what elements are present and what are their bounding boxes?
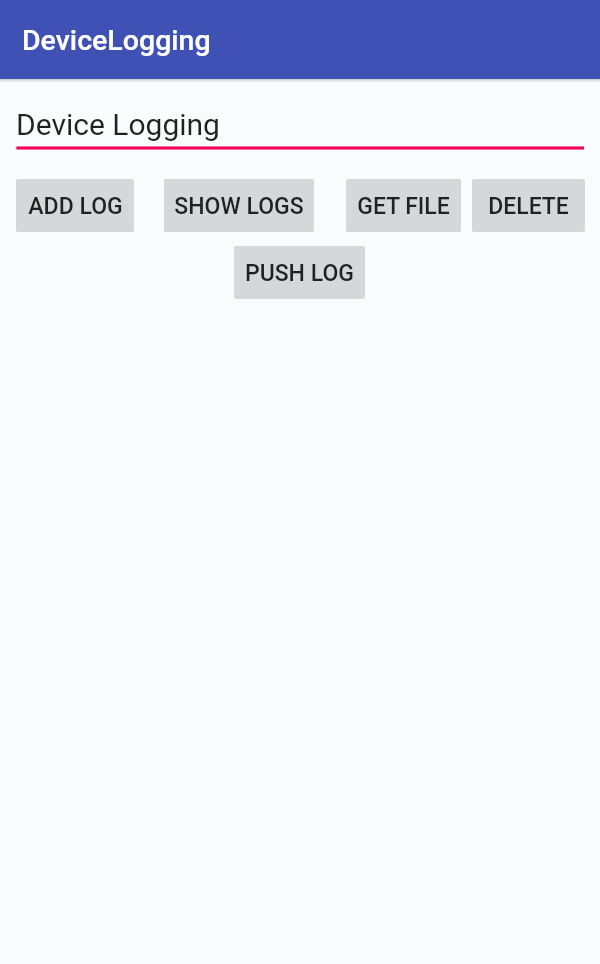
staticText: DeviceLogging [22,24,211,57]
staticText: ADD LOG [28,193,123,220]
staticText: GET FILE [357,193,450,220]
button[interactable]: GET FILE [346,179,461,232]
button[interactable]: ADD LOG [16,179,134,232]
staticText: PUSH LOG [245,260,354,287]
button[interactable]: DELETE [472,179,585,232]
button[interactable]: SHOW LOGS [164,179,314,232]
button[interactable]: PUSH LOG [234,246,365,299]
staticText: SHOW LOGS [174,193,304,220]
staticText: Device Logging [16,107,220,142]
staticText: DELETE [488,193,569,220]
